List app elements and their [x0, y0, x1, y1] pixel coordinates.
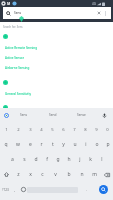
button[interactable]: s: [18, 152, 30, 167]
button[interactable]: Backspace: [101, 167, 113, 182]
button[interactable]: 7: [69, 122, 80, 137]
button[interactable]: t: [47, 137, 58, 152]
button[interactable]: Airborne Sensing: [0, 63, 113, 72]
button[interactable]: Voice input: [96, 110, 113, 120]
button[interactable]: Clear: [95, 9, 103, 17]
staticText: Sens: [20, 113, 28, 117]
staticText: M: [7, 1, 11, 6]
staticText: k: [89, 156, 92, 163]
staticText: o: [95, 141, 99, 148]
button[interactable]: p: [102, 137, 113, 152]
staticText: r: [40, 141, 43, 148]
button[interactable]: 1: [0, 122, 12, 137]
staticText: i: [85, 141, 87, 148]
staticText: v: [54, 171, 57, 178]
button[interactable]: 3: [24, 122, 36, 137]
button[interactable]: m: [88, 167, 101, 182]
staticText: 1: [5, 127, 8, 133]
button[interactable]: y: [58, 137, 69, 152]
button[interactable]: h: [63, 152, 74, 167]
button[interactable]: q: [0, 137, 12, 152]
button[interactable]: Search: [99, 185, 108, 194]
button[interactable]: j: [74, 152, 85, 167]
button[interactable]: e: [24, 137, 36, 152]
button[interactable]: b: [62, 167, 75, 182]
staticText: 2: [17, 127, 20, 133]
staticText: b: [67, 171, 71, 178]
staticText: 5: [51, 127, 54, 133]
staticText: 6: [62, 127, 65, 133]
button[interactable]: 2: [12, 122, 24, 137]
staticText: .: [86, 187, 88, 192]
button[interactable]: ,: [11, 182, 19, 197]
button[interactable]: Sens: [10, 108, 38, 122]
staticText: q: [4, 141, 8, 148]
staticText: w: [16, 141, 20, 148]
staticText: x: [29, 171, 32, 178]
staticText: 4: [40, 127, 43, 133]
button[interactable]: i: [80, 137, 91, 152]
button[interactable]: Send: [38, 108, 67, 122]
button[interactable]: General Sensitivity: [0, 89, 113, 98]
staticText: Active Sensor: [5, 56, 24, 60]
button[interactable]: u: [69, 137, 80, 152]
button[interactable]: 6: [58, 122, 69, 137]
button[interactable]: 8: [80, 122, 91, 137]
button[interactable]: ?123: [0, 182, 11, 197]
staticText: 8: [84, 127, 87, 133]
button[interactable]: r: [36, 137, 47, 152]
button[interactable]: 9: [91, 122, 102, 137]
button[interactable]: f: [41, 152, 52, 167]
button[interactable]: g: [52, 152, 63, 167]
staticText: z: [17, 171, 20, 178]
button[interactable]: v: [49, 167, 62, 182]
button[interactable]: n: [75, 167, 88, 182]
staticText: u: [73, 141, 77, 148]
staticText: Sens: [14, 11, 22, 15]
staticText: ?123: [2, 188, 9, 192]
staticText: e: [29, 141, 32, 148]
button[interactable]: Google: [2, 111, 10, 119]
button[interactable]: Active Sensor: [0, 53, 113, 62]
button[interactable]: l: [96, 152, 107, 167]
button[interactable]: d: [30, 152, 41, 167]
staticText: g: [56, 156, 60, 163]
button[interactable]: Active Remote Sensing: [0, 43, 113, 52]
button[interactable]: Emoji: [19, 182, 27, 197]
staticText: l: [101, 156, 103, 163]
button[interactable]: 5: [47, 122, 58, 137]
staticText: t: [52, 141, 54, 148]
staticText: 9: [95, 127, 98, 133]
staticText: Send: [49, 113, 57, 117]
button[interactable]: 4: [36, 122, 47, 137]
staticText: n: [80, 171, 84, 178]
button[interactable]: Shift: [0, 167, 12, 182]
button[interactable]: k: [85, 152, 96, 167]
staticText: 3: [29, 127, 32, 133]
staticText: ,: [14, 187, 16, 192]
staticText: h: [67, 156, 71, 163]
button[interactable]: a: [6, 152, 18, 167]
staticText: General Sensitivity: [5, 92, 32, 96]
staticText: 0: [106, 127, 109, 133]
staticText: Sense: [77, 113, 86, 117]
staticText: Active Remote Sensing: [5, 46, 38, 50]
staticText: Search for: Sens: [3, 25, 23, 29]
staticText: p: [106, 141, 110, 148]
staticText: c: [41, 171, 44, 178]
staticText: y: [62, 141, 65, 148]
button[interactable]: x: [24, 167, 36, 182]
button[interactable]: w: [12, 137, 24, 152]
button[interactable]: 0: [102, 122, 113, 137]
button[interactable]: o: [91, 137, 102, 152]
button[interactable]: c: [36, 167, 49, 182]
staticText: a: [11, 156, 14, 163]
button[interactable]: Sense: [67, 108, 96, 122]
staticText: 7: [73, 127, 76, 133]
staticText: Airborne Sensing: [5, 66, 30, 70]
staticText: d: [34, 156, 38, 163]
button[interactable]: Sens: [3, 7, 111, 19]
button[interactable]: z: [12, 167, 24, 182]
